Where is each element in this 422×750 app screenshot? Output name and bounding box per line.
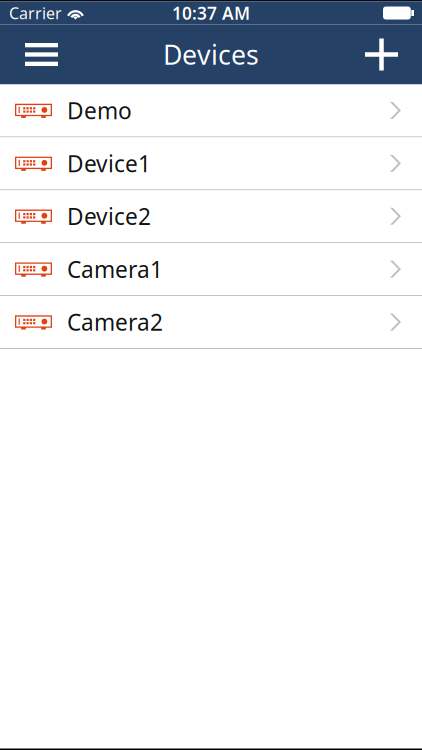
staticText: Devices <box>163 37 259 72</box>
button[interactable]: Device2 <box>0 190 422 242</box>
staticText: 10:37 AM <box>172 1 250 24</box>
staticText: Camera1 <box>67 254 163 284</box>
button[interactable]: Menu <box>0 30 70 79</box>
button[interactable]: Add device <box>353 26 422 82</box>
staticText: Camera2 <box>67 307 163 337</box>
staticText: Device1 <box>67 148 151 178</box>
staticText: Demo <box>67 95 132 125</box>
button[interactable]: Demo <box>0 84 422 136</box>
button[interactable]: Camera2 <box>0 296 422 348</box>
staticText: Device2 <box>67 201 151 231</box>
staticText: Carrier <box>9 2 62 24</box>
button[interactable]: Device1 <box>0 137 422 189</box>
button[interactable]: Camera1 <box>0 243 422 295</box>
